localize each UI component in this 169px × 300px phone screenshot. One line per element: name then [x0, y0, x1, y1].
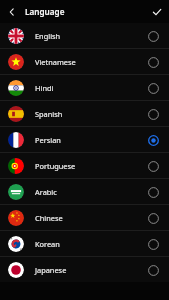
staticText: Japanese	[35, 265, 145, 275]
staticText: Hindi	[35, 83, 145, 93]
staticText: Korean	[35, 239, 145, 249]
staticText: Language	[25, 6, 65, 17]
button[interactable]: English	[0, 23, 169, 48]
button[interactable]: Hindi	[0, 75, 169, 100]
staticText: Spanish	[35, 109, 145, 119]
button[interactable]: Chinese	[0, 205, 169, 230]
staticText: Arabic	[35, 187, 145, 197]
button[interactable]: Spanish	[0, 101, 169, 126]
button[interactable]: Back	[4, 4, 20, 20]
staticText: Persian	[35, 135, 145, 145]
staticText: Vietnamese	[35, 57, 145, 67]
button[interactable]: Vietnamese	[0, 49, 169, 74]
button[interactable]: Portuguese	[0, 153, 169, 178]
staticText: Chinese	[35, 213, 145, 223]
staticText: English	[35, 31, 145, 41]
button[interactable]: Korean	[0, 231, 169, 256]
button[interactable]: Japanese	[0, 257, 169, 282]
staticText: Portuguese	[35, 161, 145, 171]
button[interactable]: Persian	[0, 127, 169, 152]
button[interactable]: Arabic	[0, 179, 169, 204]
button[interactable]: Confirm	[148, 3, 166, 21]
